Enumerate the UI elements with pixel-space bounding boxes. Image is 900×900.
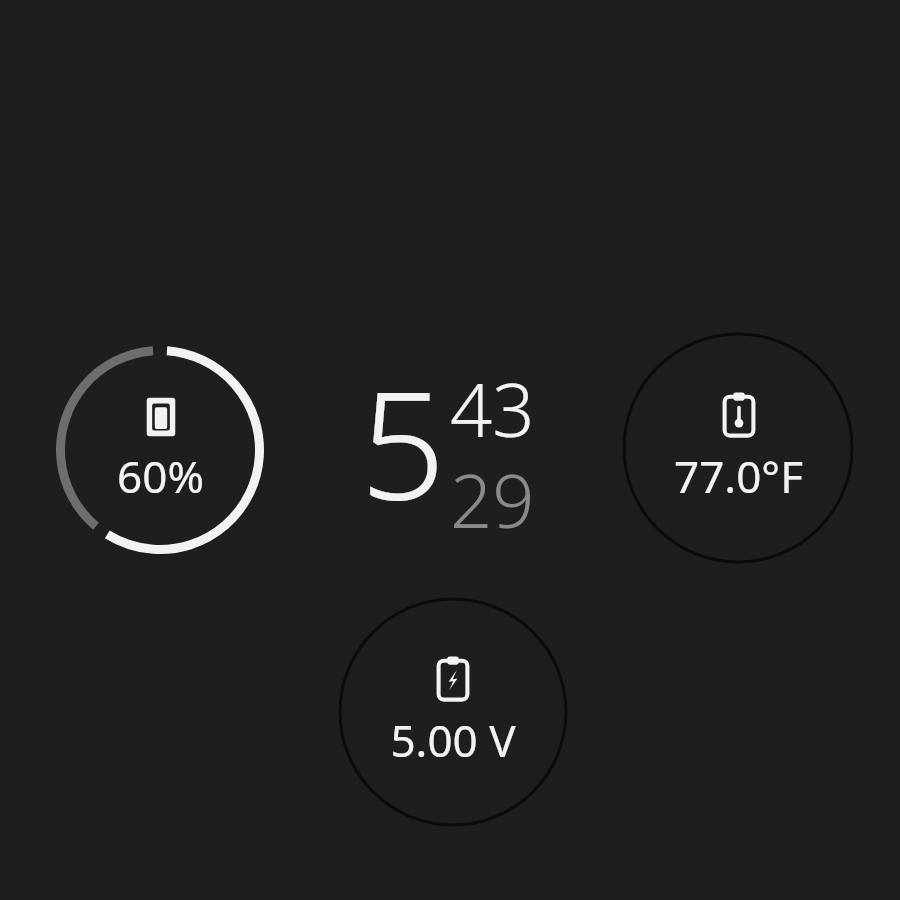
button[interactable]: Battery 60 percent bbox=[55, 345, 265, 555]
button[interactable]: Temperature 77.0 degrees Fahrenheit bbox=[622, 332, 854, 564]
staticText: 5 bbox=[360, 340, 446, 544]
staticText: 43 bbox=[450, 358, 535, 459]
staticText: 77.0°F bbox=[674, 446, 803, 506]
staticText: 60% bbox=[117, 446, 204, 506]
staticText: 5.00 V bbox=[390, 710, 516, 770]
button[interactable]: Voltage 5.00 volts bbox=[338, 597, 568, 827]
staticText: 29 bbox=[450, 449, 535, 550]
